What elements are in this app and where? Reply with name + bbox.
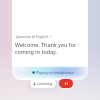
staticText: English [36,34,48,39]
staticText: Welcome. Thank you for coming in today. [15,41,85,55]
staticText: Playing on headphones [36,70,74,75]
staticText: Listening [37,81,53,86]
button[interactable]: Japanese [16,34,52,39]
button[interactable]: Listening [30,79,56,88]
button[interactable]: Playing on headphones [32,69,74,75]
staticText: Japanese [16,34,31,39]
button[interactable]: Pause [59,79,73,88]
